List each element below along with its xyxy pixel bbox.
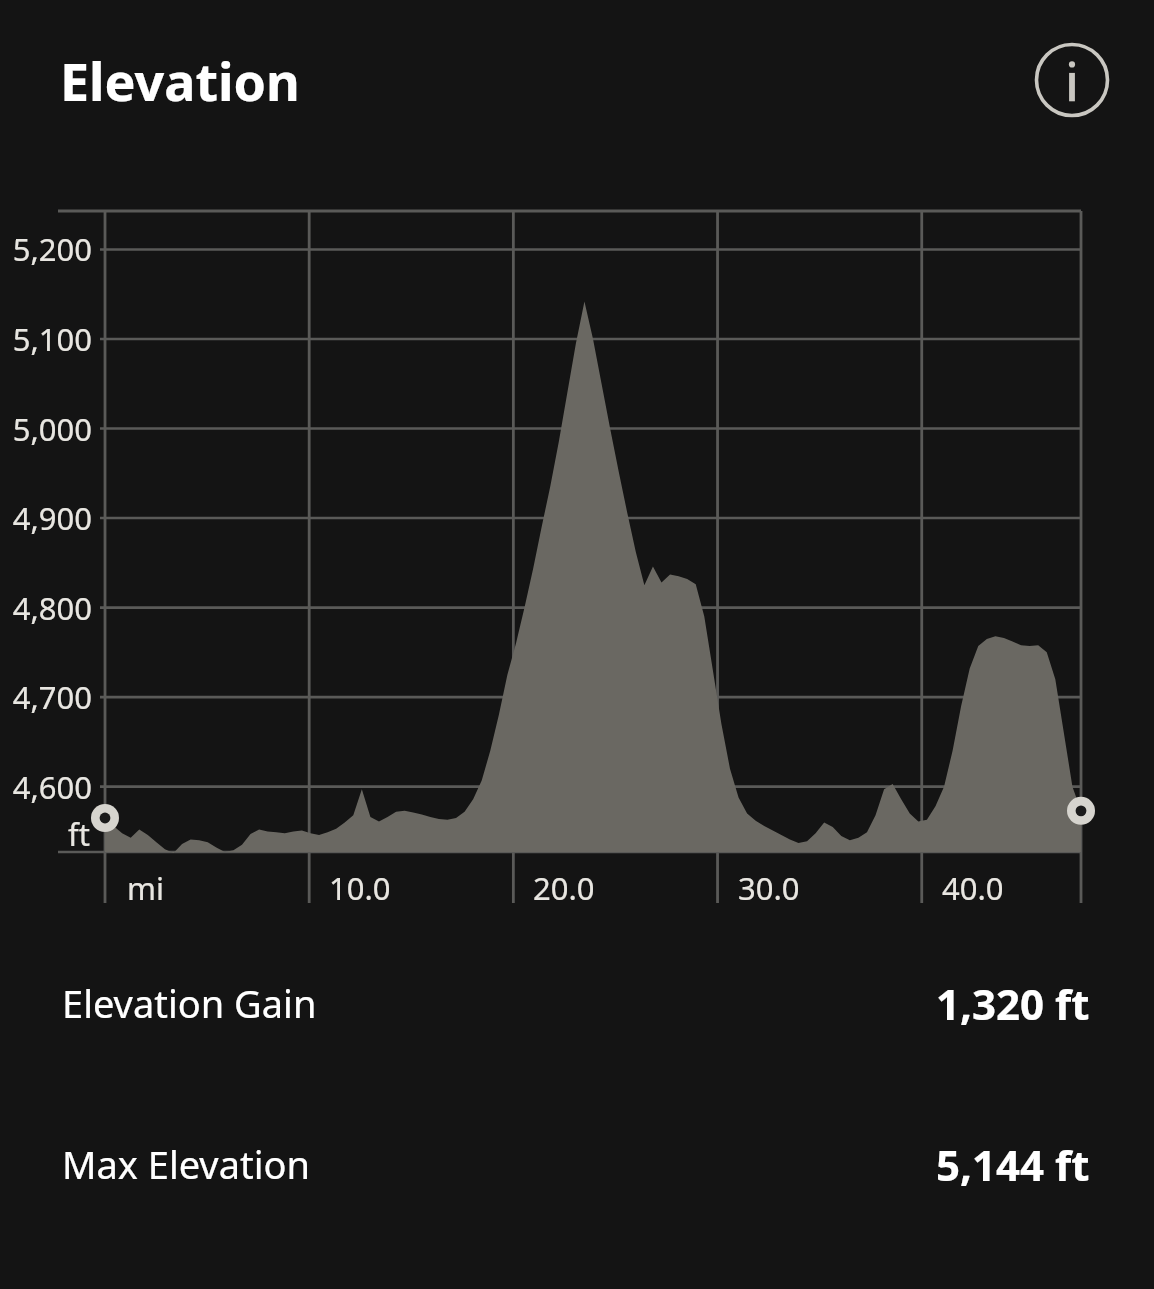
staticText: 5,000 — [0, 408, 92, 450]
staticText: ft — [68, 813, 90, 855]
button[interactable]: Max Elevation — [0, 1131, 1154, 1197]
staticText: 30.0 — [738, 867, 800, 909]
staticText: 5,144 ft — [936, 1136, 1090, 1193]
button[interactable]: Elevation Gain — [0, 970, 1154, 1036]
button[interactable]: Info — [1034, 42, 1110, 118]
staticText: Max Elevation — [62, 1138, 310, 1190]
staticText: 10.0 — [329, 867, 391, 909]
staticText: 20.0 — [533, 867, 595, 909]
staticText: 5,100 — [0, 318, 92, 360]
staticText: 1,320 ft — [936, 975, 1090, 1032]
staticText: Elevation Gain — [62, 977, 317, 1029]
staticText: 4,800 — [0, 587, 92, 629]
staticText: 4,600 — [0, 766, 92, 808]
staticText: 4,700 — [0, 676, 92, 718]
staticText: mi — [127, 867, 164, 909]
staticText: 40.0 — [942, 867, 1004, 909]
staticText: 5,200 — [0, 228, 92, 270]
staticText: 4,900 — [0, 497, 92, 539]
staticText: Elevation — [60, 45, 300, 116]
